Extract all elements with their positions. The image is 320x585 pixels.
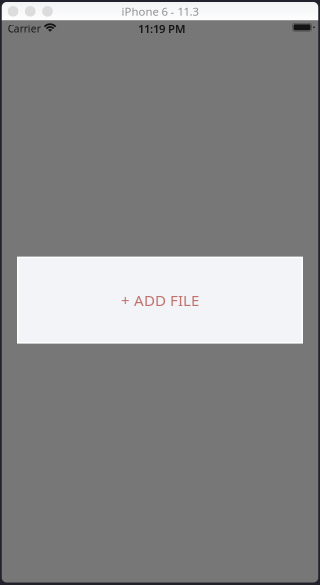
staticText: 11:19 PM: [138, 21, 186, 36]
staticText: iPhone 6 - 11.3: [121, 4, 198, 19]
staticText: Carrier: [8, 22, 41, 35]
staticText: + ADD FILE: [121, 290, 199, 310]
button[interactable]: + ADD FILE: [17, 257, 303, 344]
